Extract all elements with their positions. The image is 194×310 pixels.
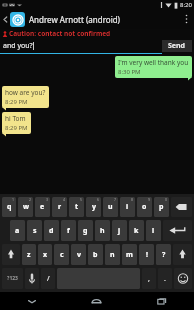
staticText: s: [33, 226, 37, 236]
button[interactable]: q: [2, 197, 16, 217]
staticText: a: [15, 226, 20, 236]
button[interactable]: ,: [142, 268, 156, 289]
button[interactable]: Recent apps: [129, 292, 194, 310]
button[interactable]: n: [105, 244, 120, 265]
button[interactable]: r: [52, 197, 67, 217]
staticText: y: [92, 202, 96, 212]
staticText: 8:29 PM: [5, 124, 28, 132]
button[interactable]: w: [18, 197, 33, 217]
staticText: e: [40, 202, 45, 212]
staticText: x: [43, 250, 48, 260]
button[interactable]: f: [61, 220, 76, 241]
staticText: 8:30 PM: [118, 68, 141, 76]
button[interactable]: hi Tom: [2, 112, 31, 134]
staticText: r: [58, 202, 62, 212]
button[interactable]: and you?: [0, 38, 162, 54]
button[interactable]: a: [10, 220, 25, 241]
staticText: hi Tom: [5, 114, 26, 123]
staticText: i: [126, 202, 129, 212]
staticText: o: [142, 202, 147, 212]
button[interactable]: m: [122, 244, 137, 265]
button[interactable]: Enter: [163, 220, 192, 241]
staticText: u: [108, 202, 113, 212]
button[interactable]: u: [103, 197, 118, 217]
button[interactable]: v: [71, 244, 86, 265]
button[interactable]: .: [158, 268, 172, 289]
staticText: b: [93, 250, 98, 260]
staticText: 0: [165, 197, 168, 202]
button[interactable]: /: [41, 268, 55, 289]
staticText: t: [75, 202, 79, 212]
staticText: Caution: contact not confirmed: [9, 29, 111, 38]
button[interactable]: d: [44, 220, 59, 241]
button[interactable]: I'm very well thank you: [115, 56, 192, 78]
button[interactable]: z: [22, 244, 36, 265]
button[interactable]: t: [69, 197, 84, 217]
staticText: g: [83, 226, 88, 236]
staticText: 4: [63, 197, 66, 202]
staticText: /: [47, 274, 50, 284]
button[interactable]: e: [35, 197, 50, 217]
button[interactable]: g: [78, 220, 93, 241]
button[interactable]: Andrew Arnott (android): [0, 9, 194, 29]
button[interactable]: s: [27, 220, 42, 241]
button[interactable]: p: [154, 197, 169, 217]
button[interactable]: l: [146, 220, 161, 241]
button[interactable]: Backspace: [171, 197, 192, 217]
button[interactable]: j: [112, 220, 127, 241]
staticText: 8: [131, 197, 134, 202]
button[interactable]: ?123: [2, 268, 23, 289]
staticText: k: [134, 226, 139, 236]
staticText: c: [60, 250, 64, 260]
staticText: f: [67, 226, 70, 236]
staticText: .: [164, 274, 166, 284]
button[interactable]: Home: [64, 292, 129, 310]
button[interactable]: ?: [156, 244, 171, 265]
staticText: ?123: [7, 275, 18, 282]
staticText: l: [152, 226, 155, 236]
staticText: how are you?: [5, 88, 46, 97]
staticText: p: [159, 202, 164, 212]
button[interactable]: c: [54, 244, 69, 265]
staticText: 2: [29, 197, 32, 202]
staticText: 8:20: [180, 1, 192, 9]
staticText: and you?: [3, 41, 33, 51]
staticText: ,: [148, 274, 150, 284]
staticText: !: [146, 250, 148, 260]
staticText: m: [126, 250, 133, 260]
staticText: h: [100, 226, 105, 236]
button[interactable]: Shift: [173, 244, 192, 265]
button[interactable]: Shift: [2, 244, 20, 265]
staticText: w: [23, 202, 29, 212]
button[interactable]: x: [38, 244, 52, 265]
staticText: ?: [162, 250, 166, 260]
staticText: 6: [97, 197, 100, 202]
staticText: I'm very well thank you: [118, 58, 189, 67]
staticText: Send: [168, 41, 186, 51]
button[interactable]: how are you?: [2, 86, 49, 108]
button[interactable]: h: [95, 220, 110, 241]
button[interactable]: Back: [0, 292, 64, 310]
staticText: j: [118, 226, 121, 236]
button[interactable]: y: [86, 197, 101, 217]
staticText: 5: [80, 197, 83, 202]
staticText: 8:29 PM: [5, 98, 28, 106]
staticText: d: [49, 226, 54, 236]
staticText: 7: [114, 197, 117, 202]
button[interactable]: i: [120, 197, 135, 217]
staticText: n: [110, 250, 115, 260]
staticText: q: [7, 202, 12, 212]
button[interactable]: Emoji: [174, 268, 192, 289]
button[interactable]: Send: [162, 40, 192, 52]
button[interactable]: More options: [181, 10, 191, 28]
button[interactable]: !: [139, 244, 154, 265]
button[interactable]: Voice input: [25, 268, 39, 289]
staticText: 3: [46, 197, 49, 202]
staticText: Andrew Arnott (android): [29, 14, 121, 25]
button[interactable]: k: [129, 220, 144, 241]
button[interactable]: b: [88, 244, 103, 265]
staticText: 1: [12, 197, 15, 202]
staticText: z: [27, 250, 31, 260]
button[interactable]: o: [137, 197, 152, 217]
